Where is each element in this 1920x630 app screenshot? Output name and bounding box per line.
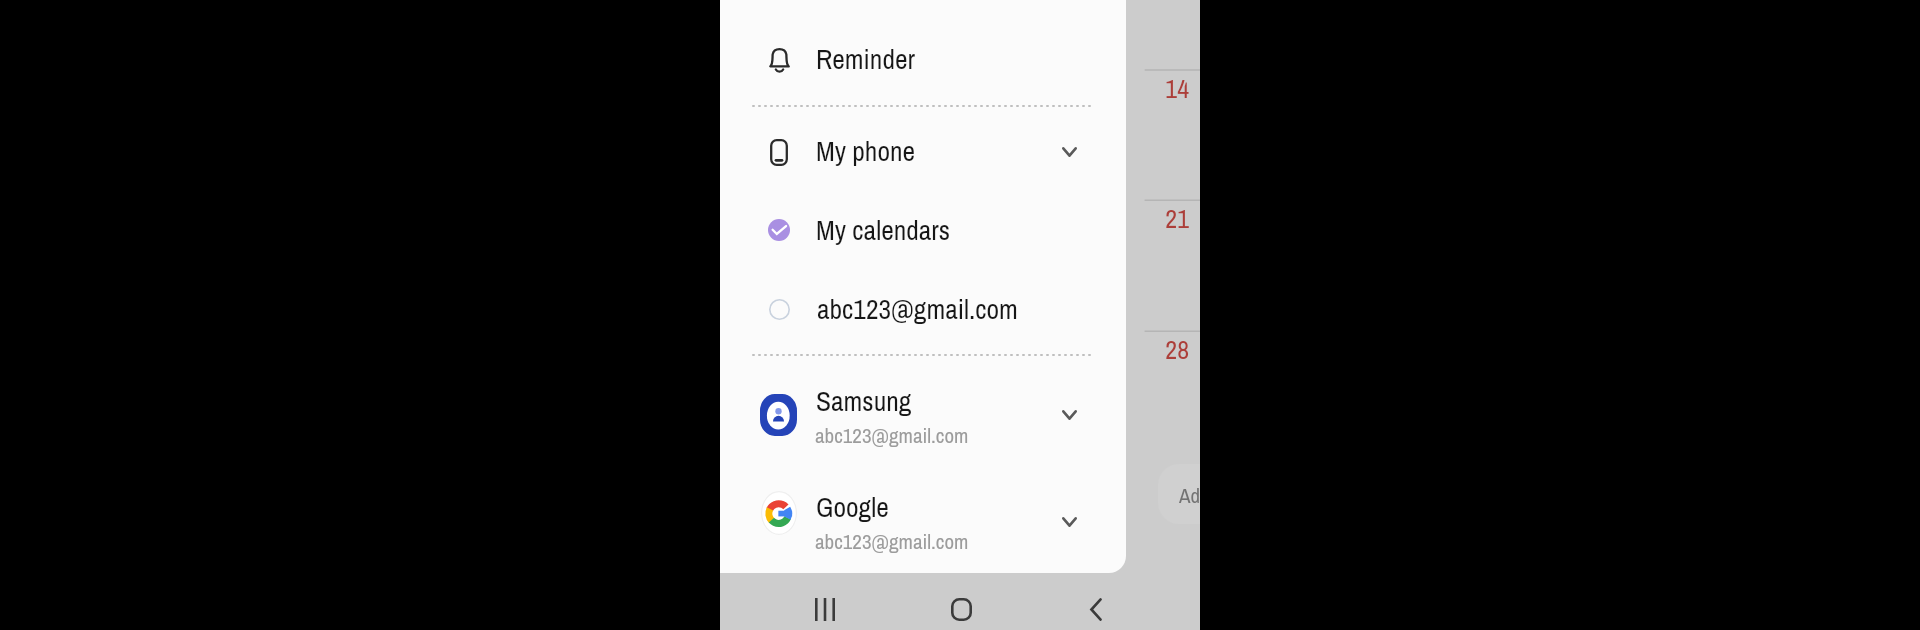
staticText: Samsung xyxy=(816,383,912,420)
staticText: Add xyxy=(1179,481,1200,509)
button[interactable] xyxy=(720,369,1126,461)
button[interactable]: Recent apps xyxy=(801,585,849,630)
staticText: abc123@gmail.com xyxy=(817,291,1018,328)
staticText: 28 xyxy=(1147,332,1189,367)
button[interactable]: Back xyxy=(1072,585,1120,630)
button[interactable]: Home xyxy=(937,585,985,630)
staticText: Reminder xyxy=(816,41,915,78)
button[interactable]: Add event xyxy=(1158,464,1200,524)
button[interactable] xyxy=(720,471,1126,563)
button[interactable]: Expand xyxy=(1051,397,1087,433)
button[interactable]: Expand xyxy=(1051,504,1087,540)
button[interactable] xyxy=(720,113,1126,191)
staticText: Google xyxy=(816,489,889,526)
staticText: abc123@gmail.com xyxy=(815,421,969,449)
staticText: 21 xyxy=(1147,201,1189,236)
button[interactable] xyxy=(720,192,1126,270)
button[interactable] xyxy=(720,271,1126,349)
staticText: My phone xyxy=(816,133,916,170)
staticText: My calendars xyxy=(816,212,951,249)
button[interactable] xyxy=(720,21,1126,99)
button[interactable]: Expand xyxy=(1051,134,1087,170)
staticText: abc123@gmail.com xyxy=(815,527,969,555)
staticText: 14 xyxy=(1147,71,1189,106)
